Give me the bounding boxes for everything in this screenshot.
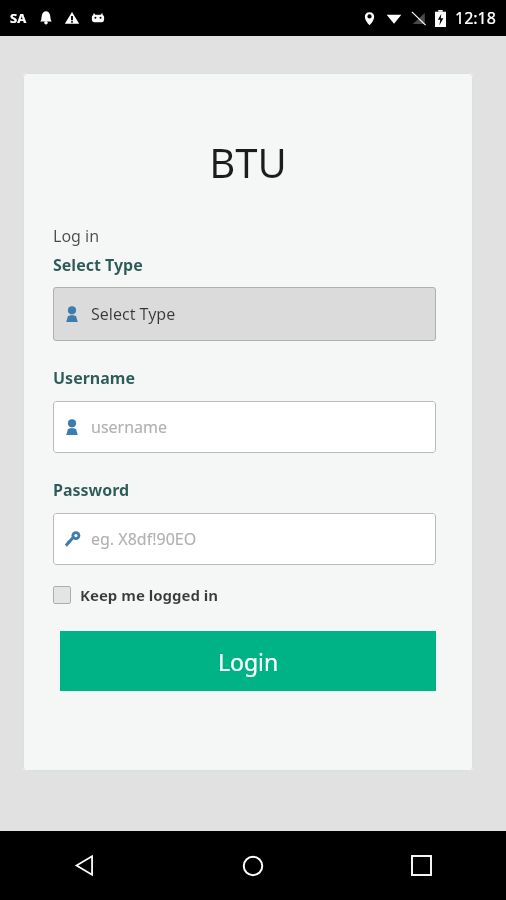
button[interactable]: Select Type bbox=[53, 287, 436, 341]
button[interactable]: Keep me logged in bbox=[53, 583, 219, 607]
staticText: Select Type bbox=[91, 303, 176, 325]
button[interactable]: Home bbox=[168, 831, 337, 900]
button[interactable]: Recent apps bbox=[337, 831, 506, 900]
staticText: Login bbox=[218, 646, 279, 677]
button[interactable]: eg. X8df!90EO bbox=[53, 513, 436, 565]
button[interactable]: username bbox=[53, 401, 436, 453]
staticText: Keep me logged in bbox=[80, 585, 219, 605]
staticText: BTU bbox=[23, 135, 473, 189]
button[interactable]: Back bbox=[0, 831, 168, 900]
staticText: username bbox=[91, 416, 168, 438]
button[interactable]: Login bbox=[60, 631, 436, 691]
staticText: Select Type bbox=[53, 254, 143, 276]
staticText: Log in bbox=[53, 225, 100, 247]
staticText: Username bbox=[53, 367, 135, 389]
staticText: eg. X8df!90EO bbox=[91, 528, 197, 550]
staticText: SA bbox=[10, 9, 27, 27]
staticText: Password bbox=[53, 479, 130, 501]
staticText: 12:18 bbox=[455, 7, 496, 29]
